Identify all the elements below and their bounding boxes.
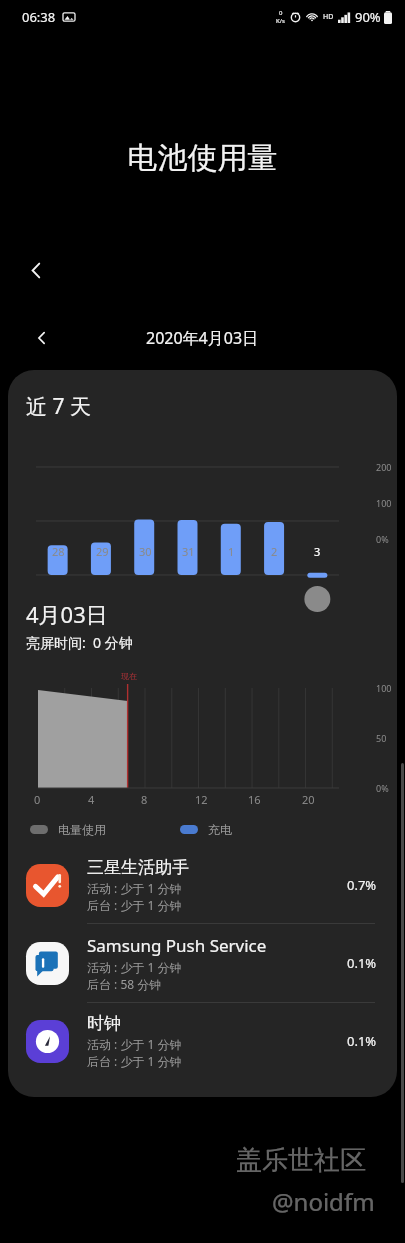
staticText: @noidfm: [272, 1185, 375, 1218]
staticText: 三星生活助手: [87, 857, 189, 878]
staticText: 时钟: [87, 1013, 121, 1034]
button[interactable]: 时钟: [8, 1003, 397, 1079]
staticText: 4: [88, 792, 95, 807]
staticText: 0.7%: [347, 876, 377, 894]
staticText: 200: [376, 461, 392, 473]
staticText: 活动 : 少于 1 分钟: [87, 1036, 182, 1052]
staticText: 4月03日: [26, 599, 108, 629]
staticText: 100: [376, 682, 392, 694]
staticText: 电量使用: [58, 822, 106, 837]
staticText: 0: [34, 792, 41, 807]
staticText: 90%: [355, 8, 381, 26]
button[interactable]: 30: [124, 544, 167, 559]
button[interactable]: 2: [253, 544, 296, 559]
staticText: 50: [376, 732, 387, 744]
button[interactable]: 1: [210, 544, 253, 559]
button[interactable]: Back: [18, 252, 54, 288]
button[interactable]: Samsung Push Service: [8, 924, 397, 1002]
staticText: 3: [314, 544, 321, 559]
button[interactable]: 三星生活助手: [8, 847, 397, 923]
staticText: 8: [141, 792, 148, 807]
staticText: 29: [96, 544, 109, 559]
staticText: 12: [195, 792, 208, 807]
button[interactable]: 31: [167, 544, 210, 559]
staticText: 现在: [121, 671, 137, 681]
staticText: 31: [182, 544, 195, 559]
staticText: 2020年4月03日: [146, 327, 259, 349]
staticText: Samsung Push Service: [87, 934, 267, 957]
staticText: 06:38: [22, 8, 56, 26]
staticText: 后台 : 少于 1 分钟: [87, 1053, 182, 1069]
staticText: HD: [323, 12, 334, 22]
staticText: 20: [302, 792, 315, 807]
staticText: 盖乐世社区: [236, 1144, 366, 1177]
staticText: 亮屏时间: 0 分钟: [26, 633, 133, 652]
staticText: 1: [228, 544, 235, 559]
staticText: 0: [279, 9, 283, 17]
button[interactable]: 29: [80, 544, 124, 559]
staticText: 充电: [208, 822, 232, 837]
staticText: 16: [248, 792, 261, 807]
staticText: 后台 : 58 分钟: [87, 976, 162, 992]
staticText: 30: [139, 544, 152, 559]
staticText: 2: [271, 544, 278, 559]
staticText: 0%: [376, 782, 389, 794]
staticText: 活动 : 少于 1 分钟: [87, 880, 182, 896]
staticText: K/s: [276, 17, 285, 25]
button[interactable]: 28: [36, 544, 80, 559]
staticText: 近 7 天: [26, 392, 91, 421]
staticText: 0%: [376, 533, 389, 545]
staticText: 电池使用量: [0, 139, 405, 177]
staticText: 后台 : 少于 1 分钟: [87, 897, 182, 913]
staticText: 100: [376, 497, 392, 509]
button[interactable]: 3: [296, 544, 339, 559]
staticText: 活动 : 少于 1 分钟: [87, 959, 182, 975]
staticText: 28: [52, 544, 65, 559]
button[interactable]: Previous day: [24, 320, 60, 356]
staticText: 0.1%: [347, 1032, 377, 1050]
staticText: 0.1%: [347, 954, 377, 972]
